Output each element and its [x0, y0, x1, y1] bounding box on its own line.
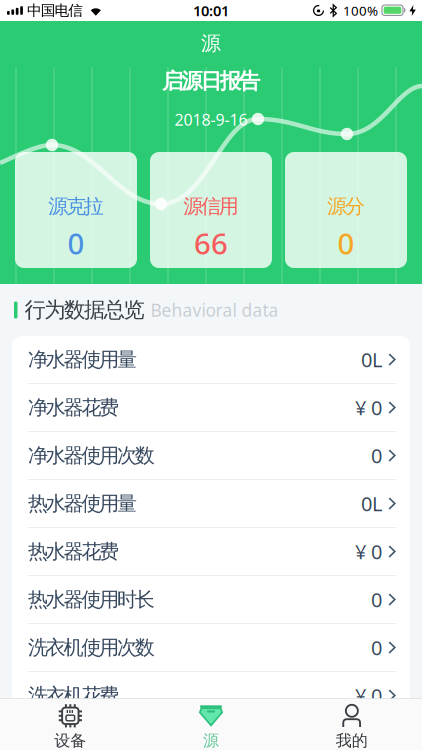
staticText: Behavioral data — [150, 298, 278, 321]
button[interactable]: 热水器使用时长 — [12, 576, 410, 623]
button[interactable]: 源 — [141, 699, 281, 750]
staticText: 源 — [201, 31, 221, 56]
staticText: 100% — [343, 2, 378, 19]
staticText: 66 — [194, 224, 228, 263]
button[interactable]: 热水器使用量 — [12, 480, 410, 527]
staticText: 源信用 — [183, 194, 239, 219]
staticText: 0L — [361, 490, 382, 517]
button[interactable]: 净水器花费 — [12, 384, 410, 431]
staticText: ¥ 0 — [355, 682, 382, 709]
staticText: ¥ 0 — [355, 394, 382, 421]
button[interactable]: 我的 — [281, 699, 422, 750]
staticText: 源克拉 — [48, 194, 104, 219]
staticText: 热水器使用量 — [28, 491, 137, 516]
staticText: 洗衣机花费 — [28, 683, 119, 708]
staticText: 设备 — [54, 731, 86, 750]
staticText: 净水器使用量 — [28, 347, 137, 372]
button[interactable]: 洗衣机花费 — [12, 672, 410, 719]
staticText: 热水器使用时长 — [28, 587, 155, 612]
staticText: 0 — [371, 586, 382, 613]
staticText: 0 — [337, 224, 354, 263]
staticText: 中国电信 — [27, 1, 83, 19]
button[interactable]: 净水器使用次数 — [12, 432, 410, 479]
staticText: 0 — [67, 224, 84, 263]
staticText: 0L — [361, 346, 382, 373]
staticText: 源 — [203, 731, 219, 750]
staticText: 0 — [371, 442, 382, 469]
staticText: 洗衣机使用次数 — [28, 635, 155, 660]
staticText: 净水器使用次数 — [28, 443, 155, 468]
button[interactable]: 洗衣机使用次数 — [12, 624, 410, 671]
staticText: 源分 — [327, 194, 365, 219]
staticText: 热水器花费 — [28, 539, 119, 564]
staticText: 净水器花费 — [28, 395, 119, 420]
button[interactable]: 设备 — [0, 699, 141, 750]
staticText: ¥ 0 — [355, 538, 382, 565]
staticText: 启源日报告 — [162, 68, 260, 94]
staticText: 我的 — [336, 731, 368, 750]
button[interactable]: 热水器花费 — [12, 528, 410, 575]
staticText: 10:01 — [193, 1, 229, 20]
staticText: 2018-9-16 — [174, 109, 247, 130]
staticText: 行为数据总览 — [24, 297, 144, 323]
button[interactable]: 净水器使用量 — [12, 336, 410, 383]
staticText: 0 — [371, 634, 382, 661]
